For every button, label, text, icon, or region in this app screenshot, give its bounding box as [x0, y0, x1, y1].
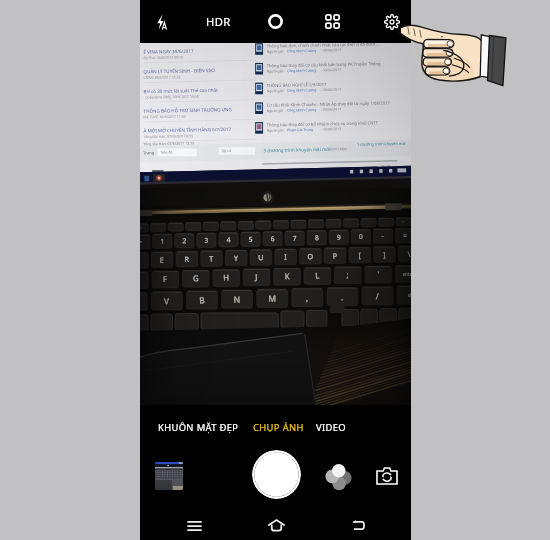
button[interactable]: HDR — [197, 0, 240, 43]
staticText: VIDEO — [316, 421, 346, 434]
button[interactable]: Filters — [327, 465, 350, 488]
button[interactable]: Home — [263, 514, 289, 536]
button[interactable]: Settings — [370, 0, 413, 43]
button[interactable]: Last photo — [155, 462, 183, 490]
button[interactable]: CHỤP ẢNH — [252, 417, 305, 438]
button[interactable]: Timer — [254, 0, 297, 43]
staticText: KHUÔN MẶT ĐẸP — [158, 421, 239, 434]
button[interactable]: KHUÔN MẶT ĐẸP — [157, 417, 240, 438]
button[interactable]: Back — [345, 514, 371, 536]
button[interactable]: Take photo — [252, 450, 301, 499]
staticText: CHỤP ẢNH — [253, 421, 304, 434]
button[interactable]: Modes — [311, 0, 354, 43]
button[interactable]: VIDEO — [315, 417, 347, 438]
button[interactable]: Switch camera — [376, 467, 398, 485]
staticText: HDR — [206, 14, 231, 29]
button[interactable]: Flash auto — [140, 0, 183, 43]
button[interactable]: Recent apps — [181, 515, 207, 537]
